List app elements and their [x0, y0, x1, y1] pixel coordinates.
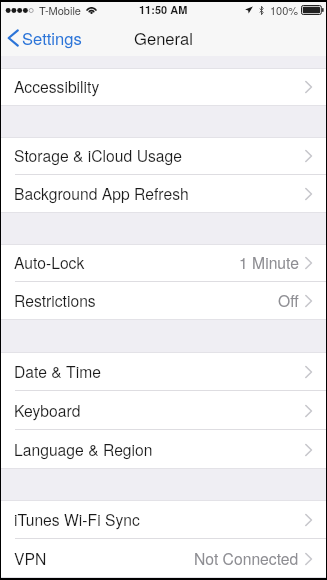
staticText: General	[134, 26, 193, 50]
staticText: Not Connected	[194, 547, 299, 569]
staticText: Restrictions	[14, 289, 96, 311]
staticText: 11:50 AM	[139, 2, 188, 18]
button[interactable]: iTunes Wi-Fi Sync	[1, 500, 326, 539]
staticText: Auto-Lock	[14, 251, 85, 273]
button[interactable]: Auto-Lock	[1, 244, 326, 282]
button[interactable]: Background App Refresh	[1, 175, 326, 213]
staticText: Language & Region	[14, 438, 153, 460]
button[interactable]: Restrictions	[1, 282, 326, 320]
staticText: Accessibility	[14, 75, 100, 97]
button[interactable]: Accessibility	[1, 68, 326, 106]
staticText: Storage & iCloud Usage	[14, 144, 182, 166]
button[interactable]: VPN	[1, 539, 326, 578]
button[interactable]: Date & Time	[1, 352, 326, 391]
staticText: Off	[278, 289, 299, 311]
staticText: Background App Refresh	[14, 182, 189, 204]
staticText: Keyboard	[14, 399, 81, 421]
staticText: iTunes Wi-Fi Sync	[14, 508, 140, 530]
button[interactable]: Storage & iCloud Usage	[1, 137, 326, 175]
button[interactable]: Keyboard	[1, 391, 326, 430]
staticText: Date & Time	[14, 360, 101, 382]
staticText: Settings	[22, 26, 82, 50]
button[interactable]: Settings	[1, 20, 90, 56]
staticText: VPN	[14, 547, 47, 569]
staticText: 1 Minute	[239, 251, 299, 273]
button[interactable]: Language & Region	[1, 430, 326, 469]
staticText: T-Mobile	[39, 2, 81, 18]
staticText: 100%	[270, 2, 299, 18]
